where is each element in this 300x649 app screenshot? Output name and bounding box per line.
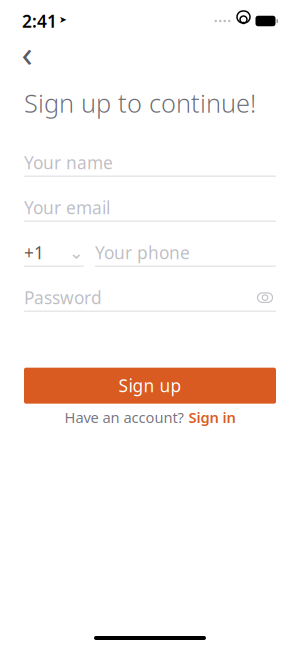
button[interactable]: Sign up	[24, 368, 276, 404]
staticText: Sign up	[118, 374, 181, 397]
button[interactable]: Back	[10, 36, 44, 70]
staticText: ➤	[59, 14, 67, 25]
staticText: ‹	[21, 29, 32, 77]
staticText: Have an account?	[64, 408, 183, 427]
staticText: 2:41	[22, 9, 57, 32]
button[interactable]: Country code	[24, 240, 84, 267]
staticText: +1	[24, 241, 44, 264]
staticText: Sign in	[188, 408, 235, 427]
staticText: Sign up to continue!	[24, 86, 256, 120]
staticText: ⌄	[69, 243, 84, 262]
staticText: Your name	[24, 151, 113, 174]
button[interactable]: Have an account?	[54, 404, 245, 431]
staticText: Your phone	[95, 241, 190, 264]
staticText: Your email	[24, 196, 110, 219]
staticText: Password	[24, 286, 102, 309]
button[interactable]: Show password	[254, 288, 276, 308]
